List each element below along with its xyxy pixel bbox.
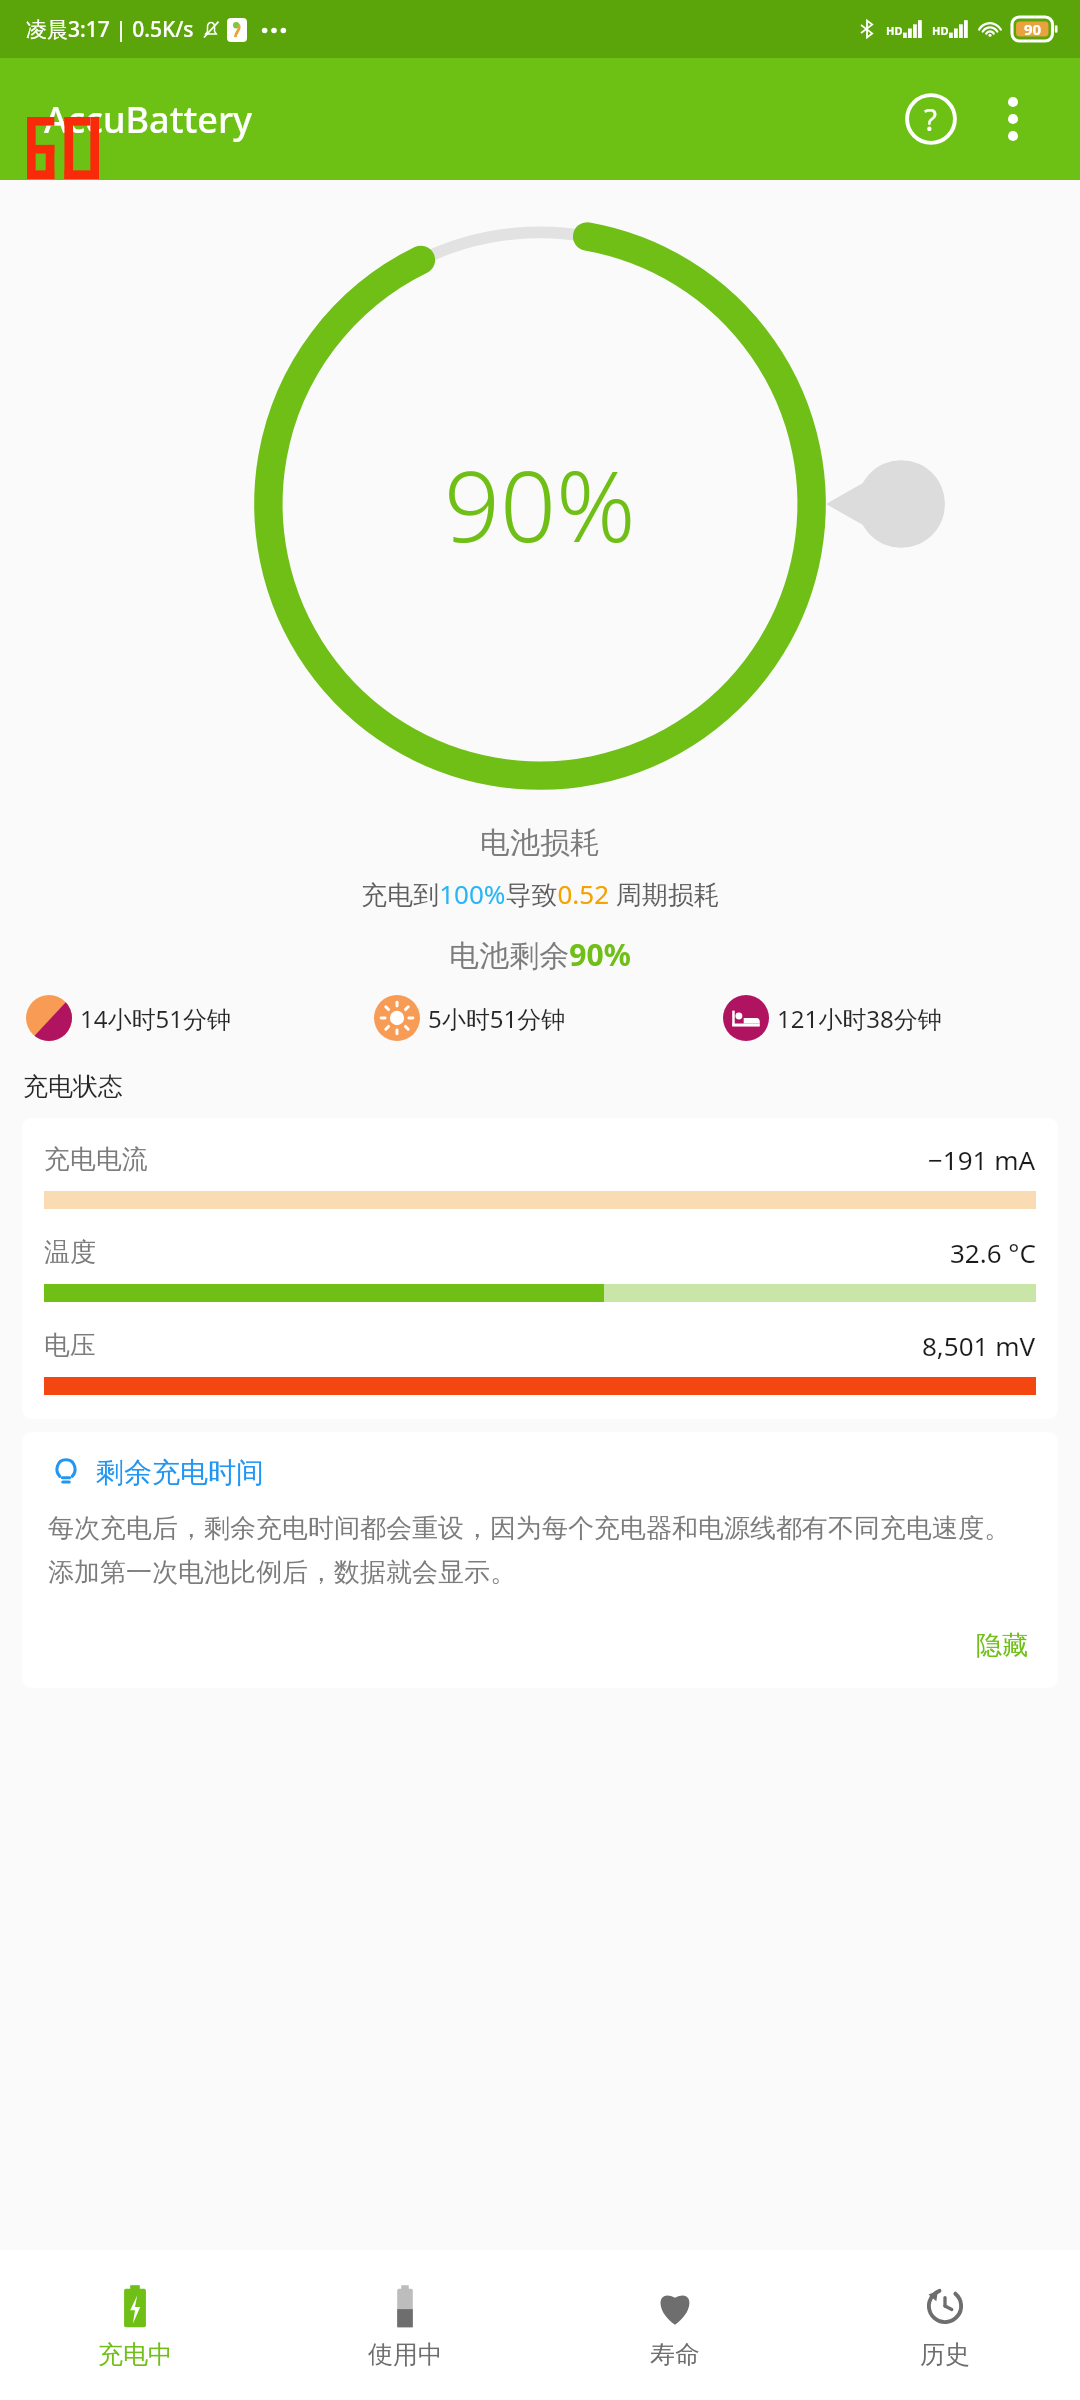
- staticText: 电池剩余90%: [449, 934, 631, 975]
- staticText: HD: [932, 23, 949, 38]
- button[interactable]: 充电电流: [22, 1118, 1058, 1419]
- button[interactable]: 5小时51分钟: [374, 995, 705, 1041]
- staticText: 充电电流: [44, 1143, 148, 1176]
- staticText: 电池损耗: [480, 824, 600, 862]
- staticText: 电压: [44, 1329, 96, 1362]
- staticText: 使用中: [368, 2339, 443, 2370]
- staticText: 14小时51分钟: [80, 1002, 231, 1035]
- button[interactable]: 历史: [810, 2250, 1080, 2400]
- staticText: 121小时38分钟: [777, 1002, 942, 1035]
- button[interactable]: 充电中: [0, 2250, 270, 2400]
- staticText: HD: [886, 23, 903, 38]
- button[interactable]: 121小时38分钟: [723, 995, 1054, 1041]
- staticText: AccuBattery: [44, 95, 253, 144]
- staticText: 8,501 mV: [922, 1328, 1036, 1363]
- staticText: 充电状态: [23, 1071, 123, 1102]
- staticText: 凌晨3:17 | 0.5K/s: [26, 15, 194, 44]
- button[interactable]: Help: [892, 80, 970, 158]
- button[interactable]: 隐藏: [972, 1625, 1032, 1666]
- staticText: 32.6 °C: [950, 1235, 1036, 1270]
- staticText: −191 mA: [928, 1142, 1036, 1177]
- staticText: 剩余充电时间: [96, 1455, 264, 1490]
- staticText: 寿命: [650, 2339, 700, 2370]
- staticText: ?: [924, 99, 938, 140]
- staticText: 温度: [44, 1236, 96, 1269]
- button[interactable]: 14小时51分钟: [26, 995, 356, 1041]
- staticText: 90: [1024, 19, 1042, 39]
- staticText: 5小时51分钟: [428, 1002, 566, 1035]
- staticText: 历史: [920, 2339, 970, 2370]
- staticText: 充电到100%导致0.52 周期损耗: [361, 876, 720, 912]
- staticText: 充电中: [98, 2339, 173, 2370]
- staticText: 每次充电后，剩余充电时间都会重设，因为每个充电器和电源线都有不同充电速度。添加第…: [48, 1512, 1032, 1589]
- button[interactable]: 寿命: [540, 2250, 810, 2400]
- staticText: 90%: [444, 437, 636, 570]
- button[interactable]: More options: [976, 82, 1050, 156]
- button[interactable]: 使用中: [270, 2250, 540, 2400]
